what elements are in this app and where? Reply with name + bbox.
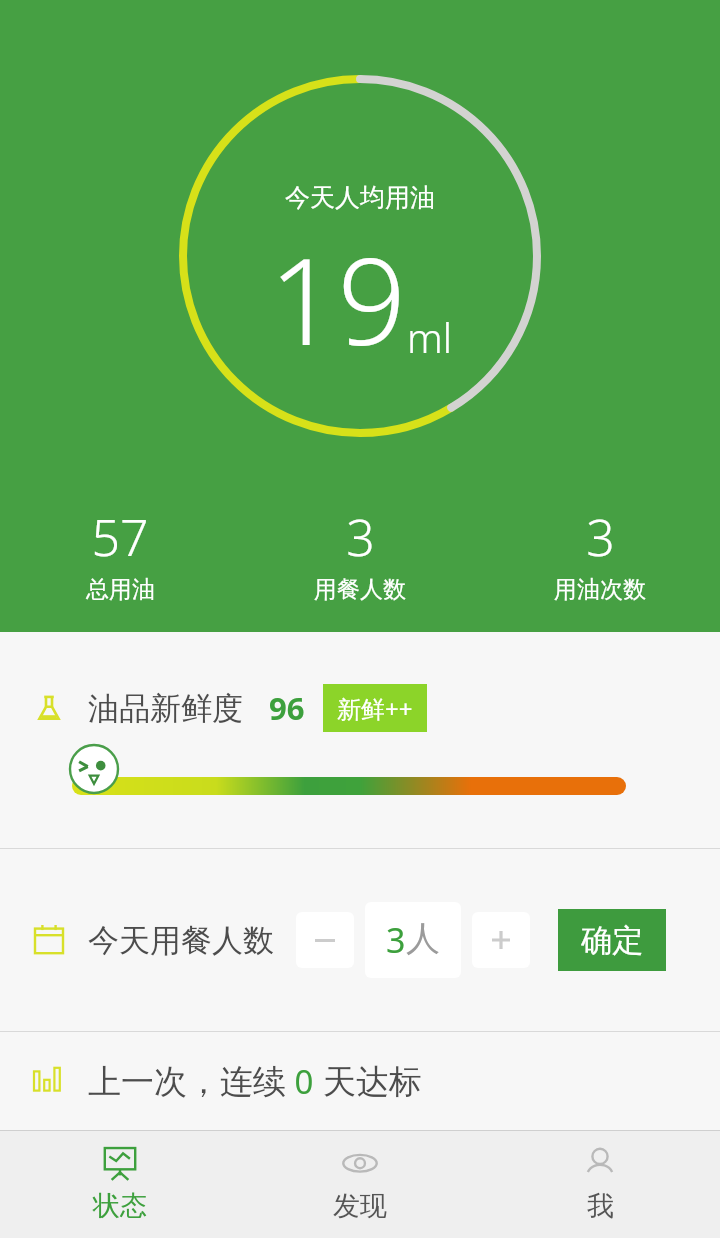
staticText: 人: [406, 917, 440, 960]
staticText: 用油次数: [554, 575, 646, 604]
button[interactable]: 增加人数: [472, 912, 530, 968]
staticText: 天达标: [323, 1061, 422, 1103]
staticText: 确定: [581, 921, 643, 960]
staticText: 96: [269, 687, 305, 729]
button[interactable]: 3: [365, 902, 461, 978]
button[interactable]: 减少人数: [296, 912, 354, 968]
staticText: 我: [587, 1189, 614, 1223]
staticText: 状态: [93, 1189, 147, 1223]
staticText: 3: [386, 917, 406, 963]
staticText: 用餐人数: [314, 575, 406, 604]
staticText: 3: [586, 503, 615, 571]
staticText: 油品新鲜度: [88, 689, 243, 728]
staticText: 3: [346, 503, 375, 571]
staticText: 0: [286, 1059, 323, 1104]
staticText: 上一次，连续: [88, 1061, 286, 1103]
button[interactable]: 油品新鲜度: [0, 632, 720, 848]
button[interactable]: 确定: [558, 909, 666, 971]
staticText: 发现: [333, 1189, 387, 1223]
staticText: 新鲜++: [337, 692, 413, 725]
button[interactable]: 状态: [0, 1131, 240, 1238]
button[interactable]: 上一次，连续: [34, 1032, 720, 1130]
staticText: 19: [269, 217, 407, 380]
staticText: 57: [91, 503, 149, 571]
button[interactable]: 发现: [240, 1131, 480, 1238]
staticText: 今天用餐人数: [88, 921, 274, 960]
staticText: 总用油: [86, 575, 155, 604]
staticText: 今天人均用油: [285, 182, 435, 213]
staticText: ml: [407, 310, 452, 364]
button[interactable]: 我: [480, 1131, 720, 1238]
